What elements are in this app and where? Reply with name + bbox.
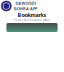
staticText: Verses and duas you saved [14, 18, 50, 22]
staticText: DAWOODI [15, 1, 35, 6]
staticText: BOHRA APP [14, 6, 37, 11]
staticText: Bookmarks [17, 11, 46, 19]
